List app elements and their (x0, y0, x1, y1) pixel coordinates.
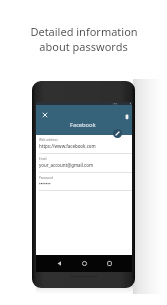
button[interactable]: Edit (113, 129, 122, 138)
staticText: Email (39, 157, 47, 161)
staticText: https://www.facebook.com (39, 143, 96, 149)
staticText: about passwords (39, 39, 128, 54)
button[interactable]: Home (80, 259, 89, 268)
staticText: your_account@gmail.com (39, 162, 94, 168)
button[interactable]: Web address (39, 135, 132, 154)
button[interactable]: Email (39, 154, 132, 173)
button[interactable]: Password (39, 173, 132, 191)
button[interactable]: Recents (105, 259, 114, 268)
button[interactable]: Back (55, 259, 64, 268)
button[interactable]: Delete (122, 112, 132, 122)
staticText: Password (39, 176, 53, 180)
staticText: Facebook (70, 121, 96, 129)
staticText: Detailed information (30, 24, 138, 39)
staticText: ••••••• (39, 181, 51, 187)
staticText: Web address (39, 138, 58, 142)
button[interactable]: Close (40, 110, 50, 120)
